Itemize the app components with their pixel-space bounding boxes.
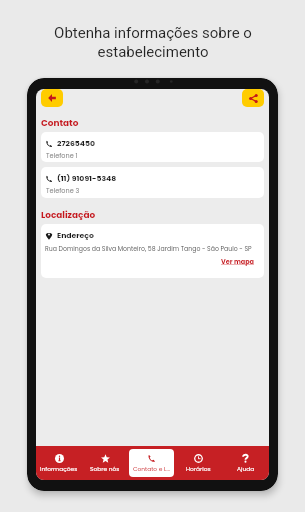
button[interactable]: Sobre nós [83,449,127,477]
button[interactable]: Endereço [41,224,264,278]
staticText: Telefone 1 [46,151,78,160]
staticText: Localização [41,209,96,221]
button[interactable]: Informações [37,449,81,477]
staticText: Informações [40,465,78,473]
button[interactable]: Contato e L... [129,449,174,477]
button[interactable]: Compartilhar [242,89,264,107]
button[interactable]: Ver mapa [221,257,255,266]
button[interactable]: Voltar [41,89,63,107]
button[interactable]: Ajuda [223,449,268,477]
staticText: Rua Domingos da Silva Monteiro, 58 Jardi… [45,244,252,253]
staticText: Sobre nós [90,465,120,473]
staticText: 27265450 [57,138,95,149]
button[interactable]: 27265450 [41,132,264,162]
button[interactable]: (11) 91091-5348 [41,167,264,198]
staticText: Telefone 3 [46,186,80,195]
staticText: Ajuda [237,465,255,473]
staticText: Endereço [57,230,94,241]
staticText: Contato e L... [133,465,171,473]
staticText: Contato [41,117,79,129]
staticText: (11) 91091-5348 [57,173,117,184]
staticText: Obtenha informações sobre o estabelecime… [54,24,252,61]
staticText: Horários [186,465,211,473]
button[interactable]: Horários [176,449,221,477]
